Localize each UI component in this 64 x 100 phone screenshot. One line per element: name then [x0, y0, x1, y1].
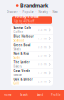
staticText: 1.1 mi — [38, 37, 47, 40]
button[interactable]: Saved — [32, 90, 48, 100]
staticText: Seafood — [13, 39, 24, 42]
staticText: Discover · Popular · Nearby · New — [6, 10, 57, 14]
staticText: Bakery — [13, 65, 21, 68]
button[interactable]: Casa Verde — [11, 69, 53, 77]
staticText: 1.7 mi — [38, 71, 47, 75]
staticText: Sunrise Cafe — [13, 26, 31, 30]
staticText: Today's deal — [15, 14, 39, 19]
staticText: 0.4 mi — [38, 28, 47, 32]
button[interactable]: Search — [16, 90, 32, 100]
staticText: Salads — [13, 47, 20, 51]
staticText: The Larder — [13, 60, 29, 64]
staticText: Search — [20, 93, 28, 97]
staticText: Grill — [13, 82, 19, 85]
staticText: 0.8 mi — [38, 45, 47, 49]
staticText: Green Bowl — [13, 43, 30, 47]
staticText: Blue Harbour — [13, 35, 33, 38]
button[interactable]: Home — [0, 90, 16, 100]
staticText: Coffee — [13, 30, 23, 34]
button[interactable]: Nori & Rice — [11, 52, 53, 60]
staticText: 2.0 mi — [38, 54, 47, 57]
button[interactable]: Blue Harbour — [11, 34, 53, 43]
staticText: Mexican — [13, 73, 22, 77]
button[interactable]: The Larder — [11, 60, 53, 68]
staticText: Home — [4, 93, 12, 97]
button[interactable]: Oak & Ember — [11, 77, 53, 86]
staticText: Casa Verde — [13, 69, 30, 73]
button[interactable]: Sunrise Cafe — [11, 26, 53, 34]
staticText: Sushi — [13, 56, 20, 59]
staticText: 0.6 mi — [38, 63, 47, 66]
button[interactable]: Green Bowl — [11, 43, 53, 51]
staticText: Brandmark — [20, 2, 48, 9]
staticText: Oak & Ember — [13, 78, 32, 81]
staticText: Up to 40% off selected stores — [15, 19, 36, 27]
staticText: Profile — [51, 93, 61, 97]
button[interactable]: Profile — [48, 90, 64, 100]
staticText: 2.4 mi — [38, 80, 47, 83]
button[interactable]: Today's deal — [12, 16, 52, 24]
staticText: Nori & Rice — [13, 52, 29, 55]
staticText: Saved — [36, 93, 43, 97]
